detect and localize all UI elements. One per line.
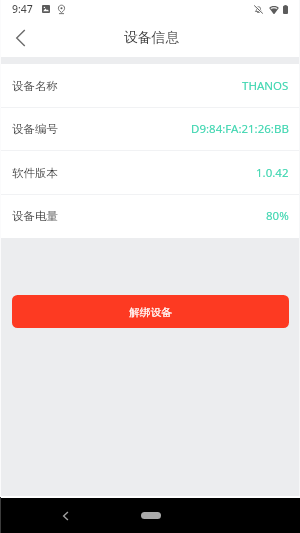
- staticText: 软件版本: [12, 166, 58, 180]
- staticText: 设备编号: [12, 122, 58, 136]
- staticText: 1.0.42: [256, 165, 289, 181]
- button[interactable]: 软件版本: [0, 151, 300, 194]
- button[interactable]: 设备名称: [0, 64, 300, 107]
- staticText: 9:47: [12, 2, 33, 16]
- button[interactable]: Back: [53, 504, 77, 528]
- staticText: 80%: [266, 208, 289, 224]
- button[interactable]: 设备电量: [0, 194, 300, 237]
- staticText: THANOS: [242, 78, 289, 94]
- button[interactable]: Back: [0, 22, 40, 54]
- button[interactable]: 解绑设备: [12, 295, 289, 328]
- button[interactable]: Home: [141, 512, 161, 519]
- staticText: 设备名称: [12, 79, 58, 93]
- button[interactable]: 设备编号: [0, 107, 300, 150]
- staticText: 解绑设备: [129, 306, 172, 319]
- staticText: D9:84:FA:21:26:BB: [191, 121, 289, 137]
- staticText: 设备信息: [124, 29, 180, 46]
- staticText: 设备电量: [12, 209, 58, 223]
